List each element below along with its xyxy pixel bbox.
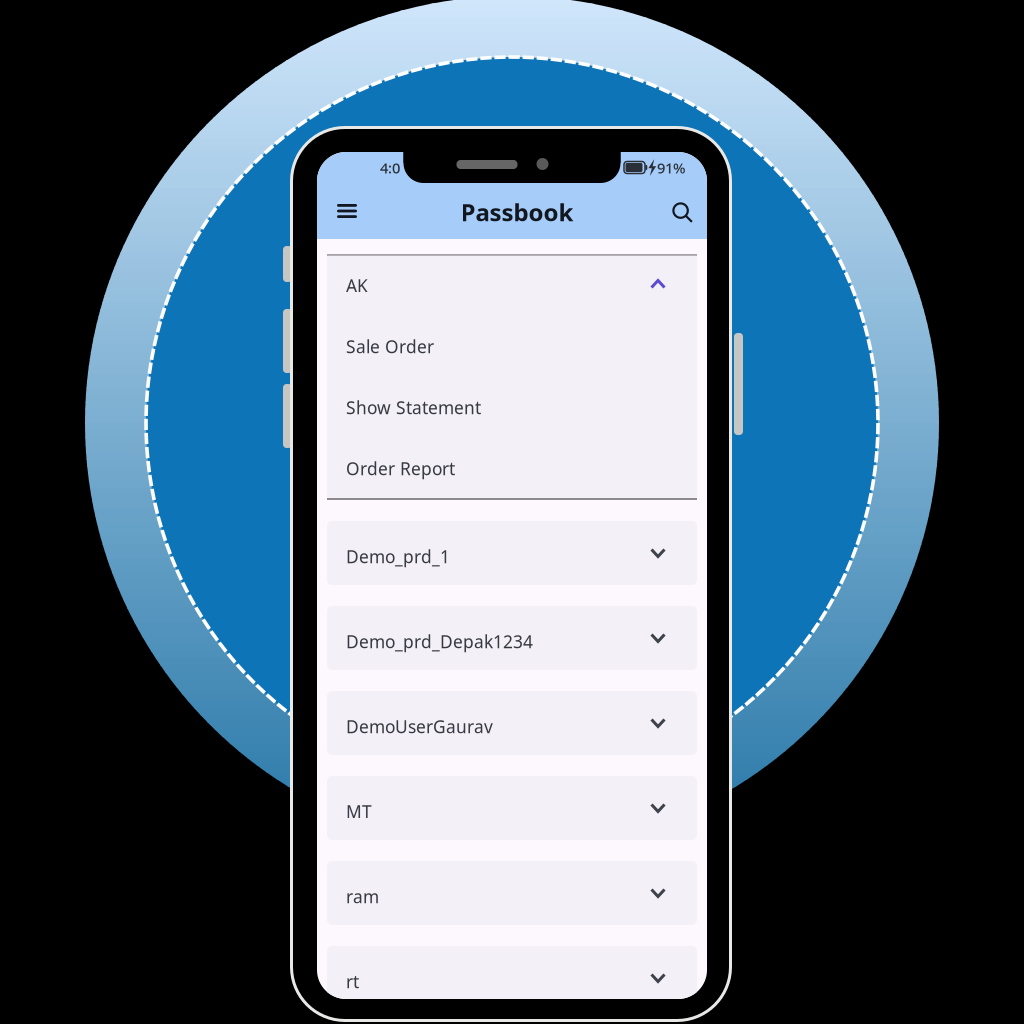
- staticText: AK: [346, 274, 368, 297]
- staticText: 91%: [657, 158, 685, 177]
- button[interactable]: DemoUserGaurav: [327, 691, 697, 755]
- button[interactable]: Search: [656, 183, 710, 239]
- staticText: Demo_prd_Depak1234: [346, 630, 533, 653]
- button[interactable]: Demo_prd_Depak1234: [327, 606, 697, 670]
- staticText: Sale Order: [346, 335, 434, 358]
- staticText: Passbook: [460, 196, 573, 228]
- staticText: Show Statement: [346, 396, 481, 419]
- button[interactable]: rt: [327, 946, 697, 1010]
- button[interactable]: Demo_prd_1: [327, 521, 697, 585]
- staticText: ram: [346, 885, 379, 908]
- staticText: rt: [346, 970, 359, 993]
- button[interactable]: ram: [327, 861, 697, 925]
- staticText: 4:0: [380, 158, 400, 177]
- button[interactable]: Menu: [317, 183, 371, 239]
- button[interactable]: AK: [327, 254, 697, 500]
- button[interactable]: MT: [327, 776, 697, 840]
- staticText: MT: [346, 800, 372, 823]
- staticText: Order Report: [346, 457, 455, 480]
- staticText: DemoUserGaurav: [346, 715, 493, 738]
- staticText: Demo_prd_1: [346, 545, 450, 568]
